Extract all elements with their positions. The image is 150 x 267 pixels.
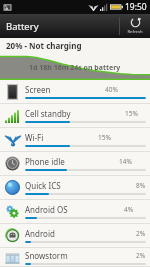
staticText: Android OS: [25, 204, 68, 215]
staticText: 1d 18h 16m 24s on battery: [29, 63, 121, 73]
staticText: 8%: [136, 181, 146, 190]
staticText: 15%: [98, 133, 111, 142]
button[interactable]: Android System: [0, 224, 150, 248]
staticText: 20% - Not charging: [6, 40, 82, 51]
button[interactable]: Quick ICS Browser: [0, 176, 150, 200]
staticText: Screen: [25, 84, 51, 95]
staticText: 19:50: [125, 1, 147, 13]
staticText: Cell standby: [25, 108, 71, 119]
button[interactable]: Wi-Fi: [0, 128, 150, 152]
staticText: Refresh: [127, 29, 143, 35]
button[interactable]: Refresh: [120, 14, 150, 38]
staticText: 14%: [119, 157, 132, 166]
staticText: Phone idle: [25, 156, 65, 167]
button[interactable]: Cell standby: [0, 104, 150, 128]
staticText: 2%: [136, 251, 146, 260]
staticText: 4%: [124, 205, 134, 214]
staticText: Battery: [6, 20, 39, 33]
button[interactable]: Android OS: [0, 200, 150, 224]
button[interactable]: Phone idle: [0, 152, 150, 176]
staticText: Android System: [25, 228, 80, 239]
staticText: 15%: [125, 109, 138, 118]
staticText: 40%: [105, 85, 118, 94]
staticText: Snowstorm application: [25, 250, 80, 261]
button[interactable]: Screen: [0, 80, 150, 104]
staticText: Quick ICS Browser: [25, 180, 80, 191]
staticText: 2%: [136, 229, 146, 238]
button[interactable]: Snowstorm application: [0, 248, 150, 267]
staticText: Wi-Fi: [25, 132, 44, 143]
